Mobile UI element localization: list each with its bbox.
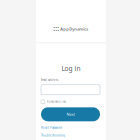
button[interactable]: Next <box>41 107 100 121</box>
button[interactable]: Reset Password <box>41 125 62 130</box>
button[interactable]: Remember me <box>41 99 100 104</box>
staticText: Email address <box>41 78 58 82</box>
staticText: Reset Password <box>41 126 62 129</box>
staticText: Next <box>66 112 74 117</box>
button[interactable]: Troubleshooting <box>41 133 65 138</box>
button[interactable]: AppDynamics <box>36 24 106 34</box>
staticText: Log in <box>61 64 80 73</box>
staticText: AppDynamics <box>60 26 88 32</box>
staticText: Troubleshooting <box>41 134 65 137</box>
staticText: Remember me <box>47 100 67 103</box>
button[interactable]: Email address <box>41 85 100 95</box>
